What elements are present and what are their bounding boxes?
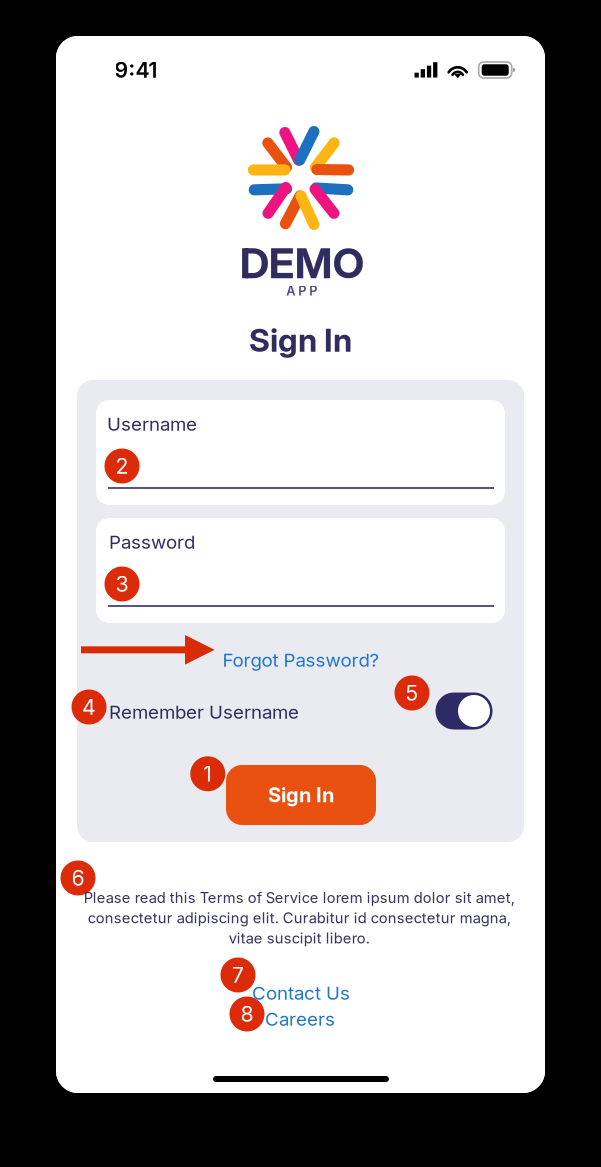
staticText: Password bbox=[109, 531, 195, 553]
staticText: 3 bbox=[115, 571, 128, 597]
staticText: 6 bbox=[71, 865, 84, 891]
staticText: Contact Us bbox=[252, 982, 350, 1004]
staticText: DEMO bbox=[240, 238, 364, 288]
button[interactable]: Careers bbox=[265, 1008, 335, 1030]
staticText: A P P bbox=[286, 283, 317, 299]
button[interactable]: Contact Us bbox=[252, 982, 350, 1004]
staticText: 5 bbox=[405, 680, 418, 706]
staticText: Username bbox=[107, 413, 197, 435]
staticText: 4 bbox=[82, 694, 96, 720]
button[interactable]: Username bbox=[96, 400, 505, 505]
staticText: 7 bbox=[232, 962, 244, 988]
button[interactable]: Remember Username, on bbox=[435, 692, 492, 729]
staticText: 9:41 bbox=[114, 57, 157, 83]
staticText: Sign In bbox=[268, 783, 334, 807]
staticText: Careers bbox=[265, 1008, 335, 1030]
button[interactable]: Password bbox=[96, 518, 505, 623]
staticText: Remember Username bbox=[109, 701, 299, 723]
button[interactable]: Remember Username bbox=[109, 701, 299, 723]
staticText: Forgot Password? bbox=[222, 649, 379, 671]
button[interactable]: Forgot Password? bbox=[222, 649, 379, 671]
staticText: 2 bbox=[115, 453, 128, 479]
staticText: 8 bbox=[240, 1001, 253, 1027]
staticText: Sign In bbox=[249, 321, 352, 359]
staticText: Please read this Terms of Service lorem … bbox=[83, 889, 514, 947]
button[interactable]: Sign In bbox=[226, 765, 376, 825]
staticText: 1 bbox=[203, 761, 212, 787]
